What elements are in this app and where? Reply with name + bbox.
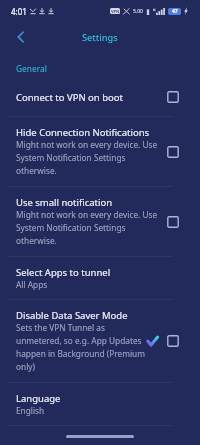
staticText: Language [16, 392, 61, 405]
staticText: Might not work on every device. Use Syst… [16, 209, 161, 247]
staticText: Might not work on every device. Use Syst… [16, 139, 161, 177]
staticText: Disable Data Saver Mode [16, 309, 128, 322]
button[interactable]: Language [0, 383, 200, 425]
staticText: 5.00 [133, 8, 143, 15]
staticText: All Apps [16, 279, 48, 290]
staticText: VPN [111, 9, 120, 14]
button[interactable]: Select Apps to tunnel [0, 257, 200, 299]
staticText: 4:01 [11, 6, 27, 17]
staticText: Select Apps to tunnel [16, 266, 111, 279]
staticText: English [16, 405, 45, 416]
button[interactable]: Use small notification [0, 187, 200, 256]
staticText: Settings [82, 31, 118, 44]
staticText: General [16, 63, 47, 74]
button[interactable]: Disable Data Saver Mode [0, 300, 200, 382]
staticText: Connect to VPN on boot [16, 91, 123, 104]
staticText: 47 [172, 8, 178, 15]
staticText: Hide Connection Notifications [16, 126, 150, 139]
button[interactable]: Connect to VPN on boot [0, 78, 200, 116]
button[interactable]: Hide Connection Notifications [0, 117, 200, 186]
staticText: Use small notification [16, 196, 113, 209]
staticText: Sets the VPN Tunnel as unmetered, so e.g… [16, 322, 146, 373]
button[interactable]: Back [8, 24, 34, 50]
